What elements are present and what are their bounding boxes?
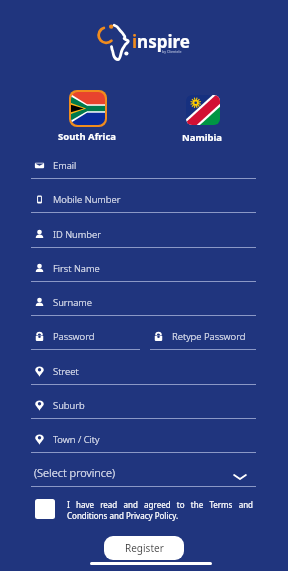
staticText: Namibia [182,131,223,142]
staticText: Town / City [53,433,100,446]
button[interactable]: ID Number [31,221,256,248]
staticText: Surname [53,296,93,309]
staticText: Email [53,159,77,172]
staticText: Password [53,330,95,343]
button[interactable]: (Select province) [31,460,256,487]
staticText: Suburb [53,399,85,412]
button[interactable]: Suburb [31,392,256,419]
button[interactable]: South Africa [57,88,117,142]
staticText: (Select province) [34,465,116,480]
staticText: inspire [132,30,190,53]
staticText: Register [125,541,164,555]
staticText: First Name [53,262,100,275]
button[interactable]: Mobile Number [31,186,256,213]
staticText: Street [53,365,79,378]
staticText: I have read and agreed to the Terms and … [67,499,253,522]
button[interactable]: Namibia [172,88,233,142]
staticText: Retype Password [172,330,246,343]
button[interactable]: I have read and agreed to the Terms and … [31,497,256,523]
other: Select province [233,470,247,484]
button[interactable]: Retype Password [150,323,256,350]
button[interactable]: First Name [31,255,256,282]
button[interactable]: Email [31,152,256,179]
button[interactable]: Surname [31,289,256,316]
staticText: ID Number [53,228,101,241]
button[interactable]: Register [104,536,184,560]
staticText: by Clientele [162,49,182,54]
button[interactable]: Street [31,358,256,385]
button[interactable]: Password [31,323,140,350]
staticText: South Africa [58,130,117,142]
button[interactable]: Town / City [31,426,256,453]
staticText: Mobile Number [53,193,121,206]
